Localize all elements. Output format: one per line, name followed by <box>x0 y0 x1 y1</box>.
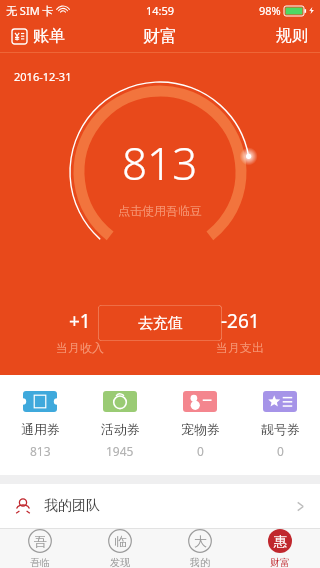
staticText: 去充值 <box>138 314 183 333</box>
staticText: 0 <box>277 443 284 459</box>
button[interactable]: 点击使用吾临豆 <box>112 201 208 220</box>
staticText: 通用券 <box>21 421 60 437</box>
staticText: 宠物券 <box>181 421 220 437</box>
staticText: 吾 <box>34 533 47 549</box>
button[interactable]: 惠 <box>240 529 320 568</box>
staticText: 当月收入 <box>56 340 104 355</box>
button[interactable]: 活动券 <box>80 389 160 461</box>
button[interactable]: 吾 <box>0 529 80 568</box>
button[interactable]: 宠物券 <box>160 389 240 461</box>
staticText: 规则 <box>276 26 308 46</box>
staticText: 靓号券 <box>261 421 300 437</box>
staticText: 98% <box>259 3 281 18</box>
staticText: 账单 <box>33 26 65 46</box>
staticText: 财富 <box>143 26 177 47</box>
staticText: 0 <box>197 443 204 459</box>
staticText: 2016-12-31 <box>14 69 72 84</box>
button[interactable]: 通用券 <box>0 389 80 461</box>
button[interactable]: -261 <box>160 308 320 355</box>
staticText: 点击使用吾临豆 <box>118 203 202 218</box>
staticText: 大 <box>194 533 207 549</box>
staticText: 813 <box>122 133 198 193</box>
button[interactable]: +1 <box>0 308 160 355</box>
staticText: 我的团队 <box>44 497 100 515</box>
button[interactable]: 我的团队 <box>0 484 320 528</box>
button[interactable]: 临 <box>80 529 160 568</box>
staticText: 吾临 <box>30 556 50 568</box>
button[interactable]: 规则 <box>266 22 320 50</box>
staticText: 临 <box>114 533 127 549</box>
button[interactable]: 去充值 <box>98 305 222 341</box>
staticText: 活动券 <box>101 421 140 437</box>
staticText: +1 <box>69 308 91 334</box>
staticText: 惠 <box>274 533 287 549</box>
staticText: 发现 <box>110 556 130 568</box>
staticText: 1945 <box>106 443 134 459</box>
button[interactable]: 账单 <box>0 22 73 50</box>
staticText: 813 <box>30 443 51 459</box>
staticText: 无 SIM 卡 <box>6 3 54 18</box>
staticText: 财富 <box>270 556 290 568</box>
staticText: 14:59 <box>146 3 175 18</box>
button[interactable]: 大 <box>160 529 240 568</box>
staticText: 我的 <box>190 556 210 568</box>
staticText: 当月支出 <box>216 340 264 355</box>
staticText: -261 <box>221 308 260 334</box>
button[interactable]: 靓号券 <box>240 389 320 461</box>
